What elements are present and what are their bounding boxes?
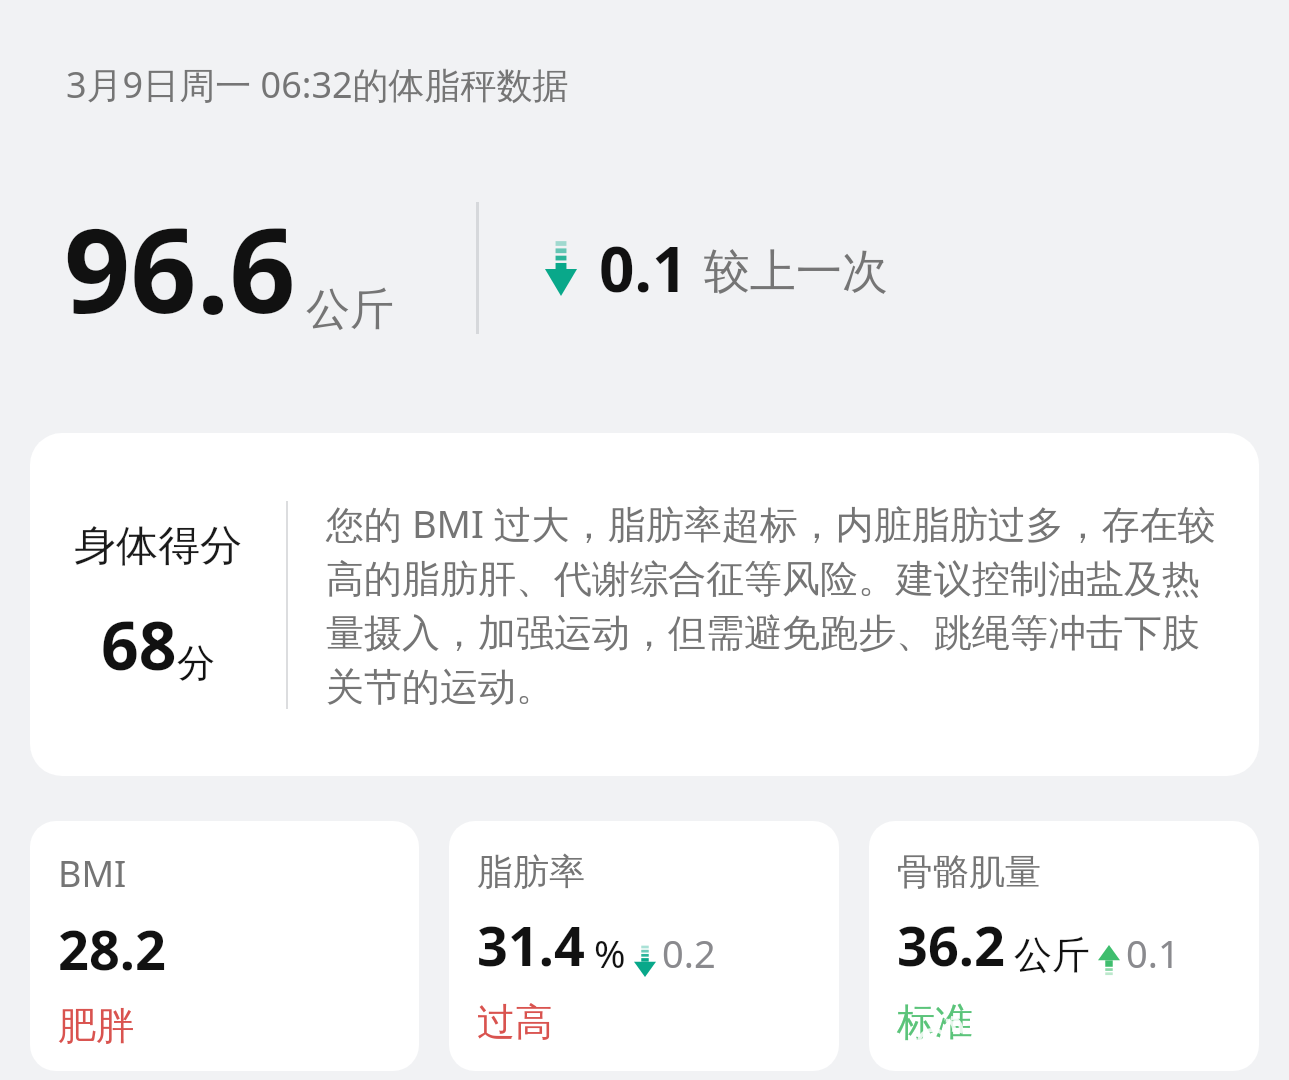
- button[interactable]: 身体得分: [30, 433, 1259, 776]
- staticText: 0.1: [1126, 927, 1180, 979]
- staticText: 0.2: [662, 927, 716, 979]
- staticText: 分: [177, 639, 215, 687]
- staticText: 身体得分: [74, 520, 242, 573]
- staticText: 公斤: [306, 282, 394, 337]
- staticText: 68: [101, 599, 177, 689]
- staticText: 肥胖: [58, 1002, 134, 1049]
- other: Decrease: [545, 240, 577, 296]
- staticText: @且听Phone吟: [968, 1009, 1259, 1066]
- staticText: 0.1: [599, 226, 688, 310]
- staticText: 36.2: [897, 908, 1005, 982]
- staticText: 您的 BMI 过大，脂肪率超标，内脏脂肪过多，存在较高的脂肪肝、代谢综合征等风险…: [326, 496, 1237, 714]
- staticText: 31.4: [477, 908, 585, 982]
- other: Decrease: [634, 945, 656, 977]
- staticText: 脂肪率: [477, 849, 585, 894]
- staticText: 较上一次: [704, 243, 888, 301]
- staticText: 标准: [897, 998, 973, 1046]
- staticText: 公斤: [1014, 931, 1090, 979]
- staticText: 28.2: [58, 912, 166, 986]
- staticText: 3月9日周一 06:32的体脂秤数据: [66, 60, 569, 109]
- staticText: %: [594, 927, 626, 979]
- other: Increase: [1098, 945, 1120, 977]
- button[interactable]: BMI: [30, 821, 419, 1071]
- staticText: 96.6: [64, 189, 296, 347]
- button[interactable]: 骨骼肌量: [869, 821, 1259, 1071]
- staticText: BMI: [58, 849, 127, 898]
- button[interactable]: 脂肪率: [449, 821, 839, 1071]
- staticText: 骨骼肌量: [897, 849, 1041, 894]
- staticText: 过高: [477, 998, 553, 1046]
